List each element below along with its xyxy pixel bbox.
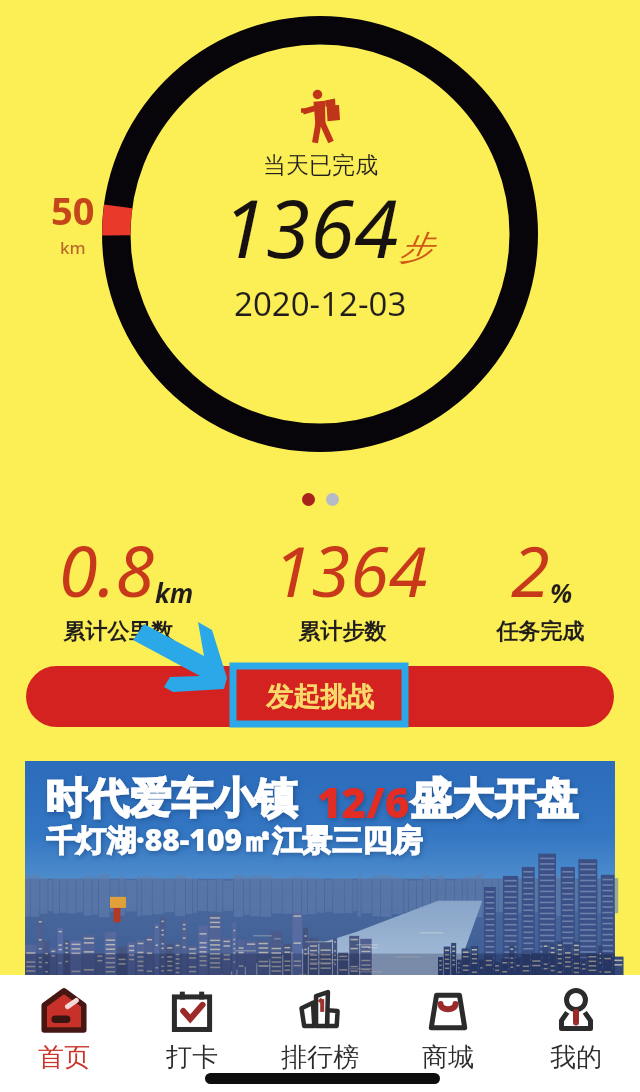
staticText: 累计公里数 bbox=[63, 618, 173, 646]
staticText: 步 bbox=[399, 227, 432, 269]
button[interactable]: Home bbox=[0, 975, 128, 1092]
staticText: 千灯湖·88-109㎡江景三四房 bbox=[46, 819, 423, 860]
staticText: 时代爱车小镇 bbox=[45, 773, 297, 826]
staticText: 当天已完成 bbox=[263, 151, 378, 180]
staticText: 50 bbox=[51, 184, 95, 236]
staticText: 发起挑战 bbox=[266, 680, 374, 714]
button[interactable]: Ranking bbox=[256, 975, 384, 1092]
staticText: 盛大开盘 bbox=[410, 773, 578, 826]
staticText: 12/6 bbox=[317, 773, 410, 830]
staticText: 2020-12-03 bbox=[234, 281, 407, 326]
staticText: 0.8 bbox=[59, 522, 155, 617]
staticText: 排行榜 bbox=[281, 1041, 359, 1074]
button[interactable]: Check in bbox=[128, 975, 256, 1092]
button[interactable]: Profile bbox=[512, 975, 640, 1092]
staticText: 1364 bbox=[222, 172, 399, 281]
button[interactable]: 发起挑战 bbox=[26, 666, 614, 727]
staticText: km bbox=[155, 575, 194, 610]
staticText: 任务完成 bbox=[496, 618, 584, 646]
staticText: 打卡 bbox=[166, 1041, 218, 1074]
staticText: 商城 bbox=[422, 1041, 474, 1074]
staticText: 我的 bbox=[550, 1041, 602, 1074]
staticText: 累计步数 bbox=[298, 618, 386, 646]
button[interactable]: 时代爱车小镇 bbox=[25, 761, 615, 975]
staticText: 首页 bbox=[38, 1041, 90, 1074]
button[interactable]: Store bbox=[384, 975, 512, 1092]
staticText: % bbox=[550, 575, 573, 610]
staticText: 2 bbox=[511, 522, 550, 617]
staticText: 1364 bbox=[273, 522, 428, 617]
staticText: km bbox=[60, 236, 86, 259]
